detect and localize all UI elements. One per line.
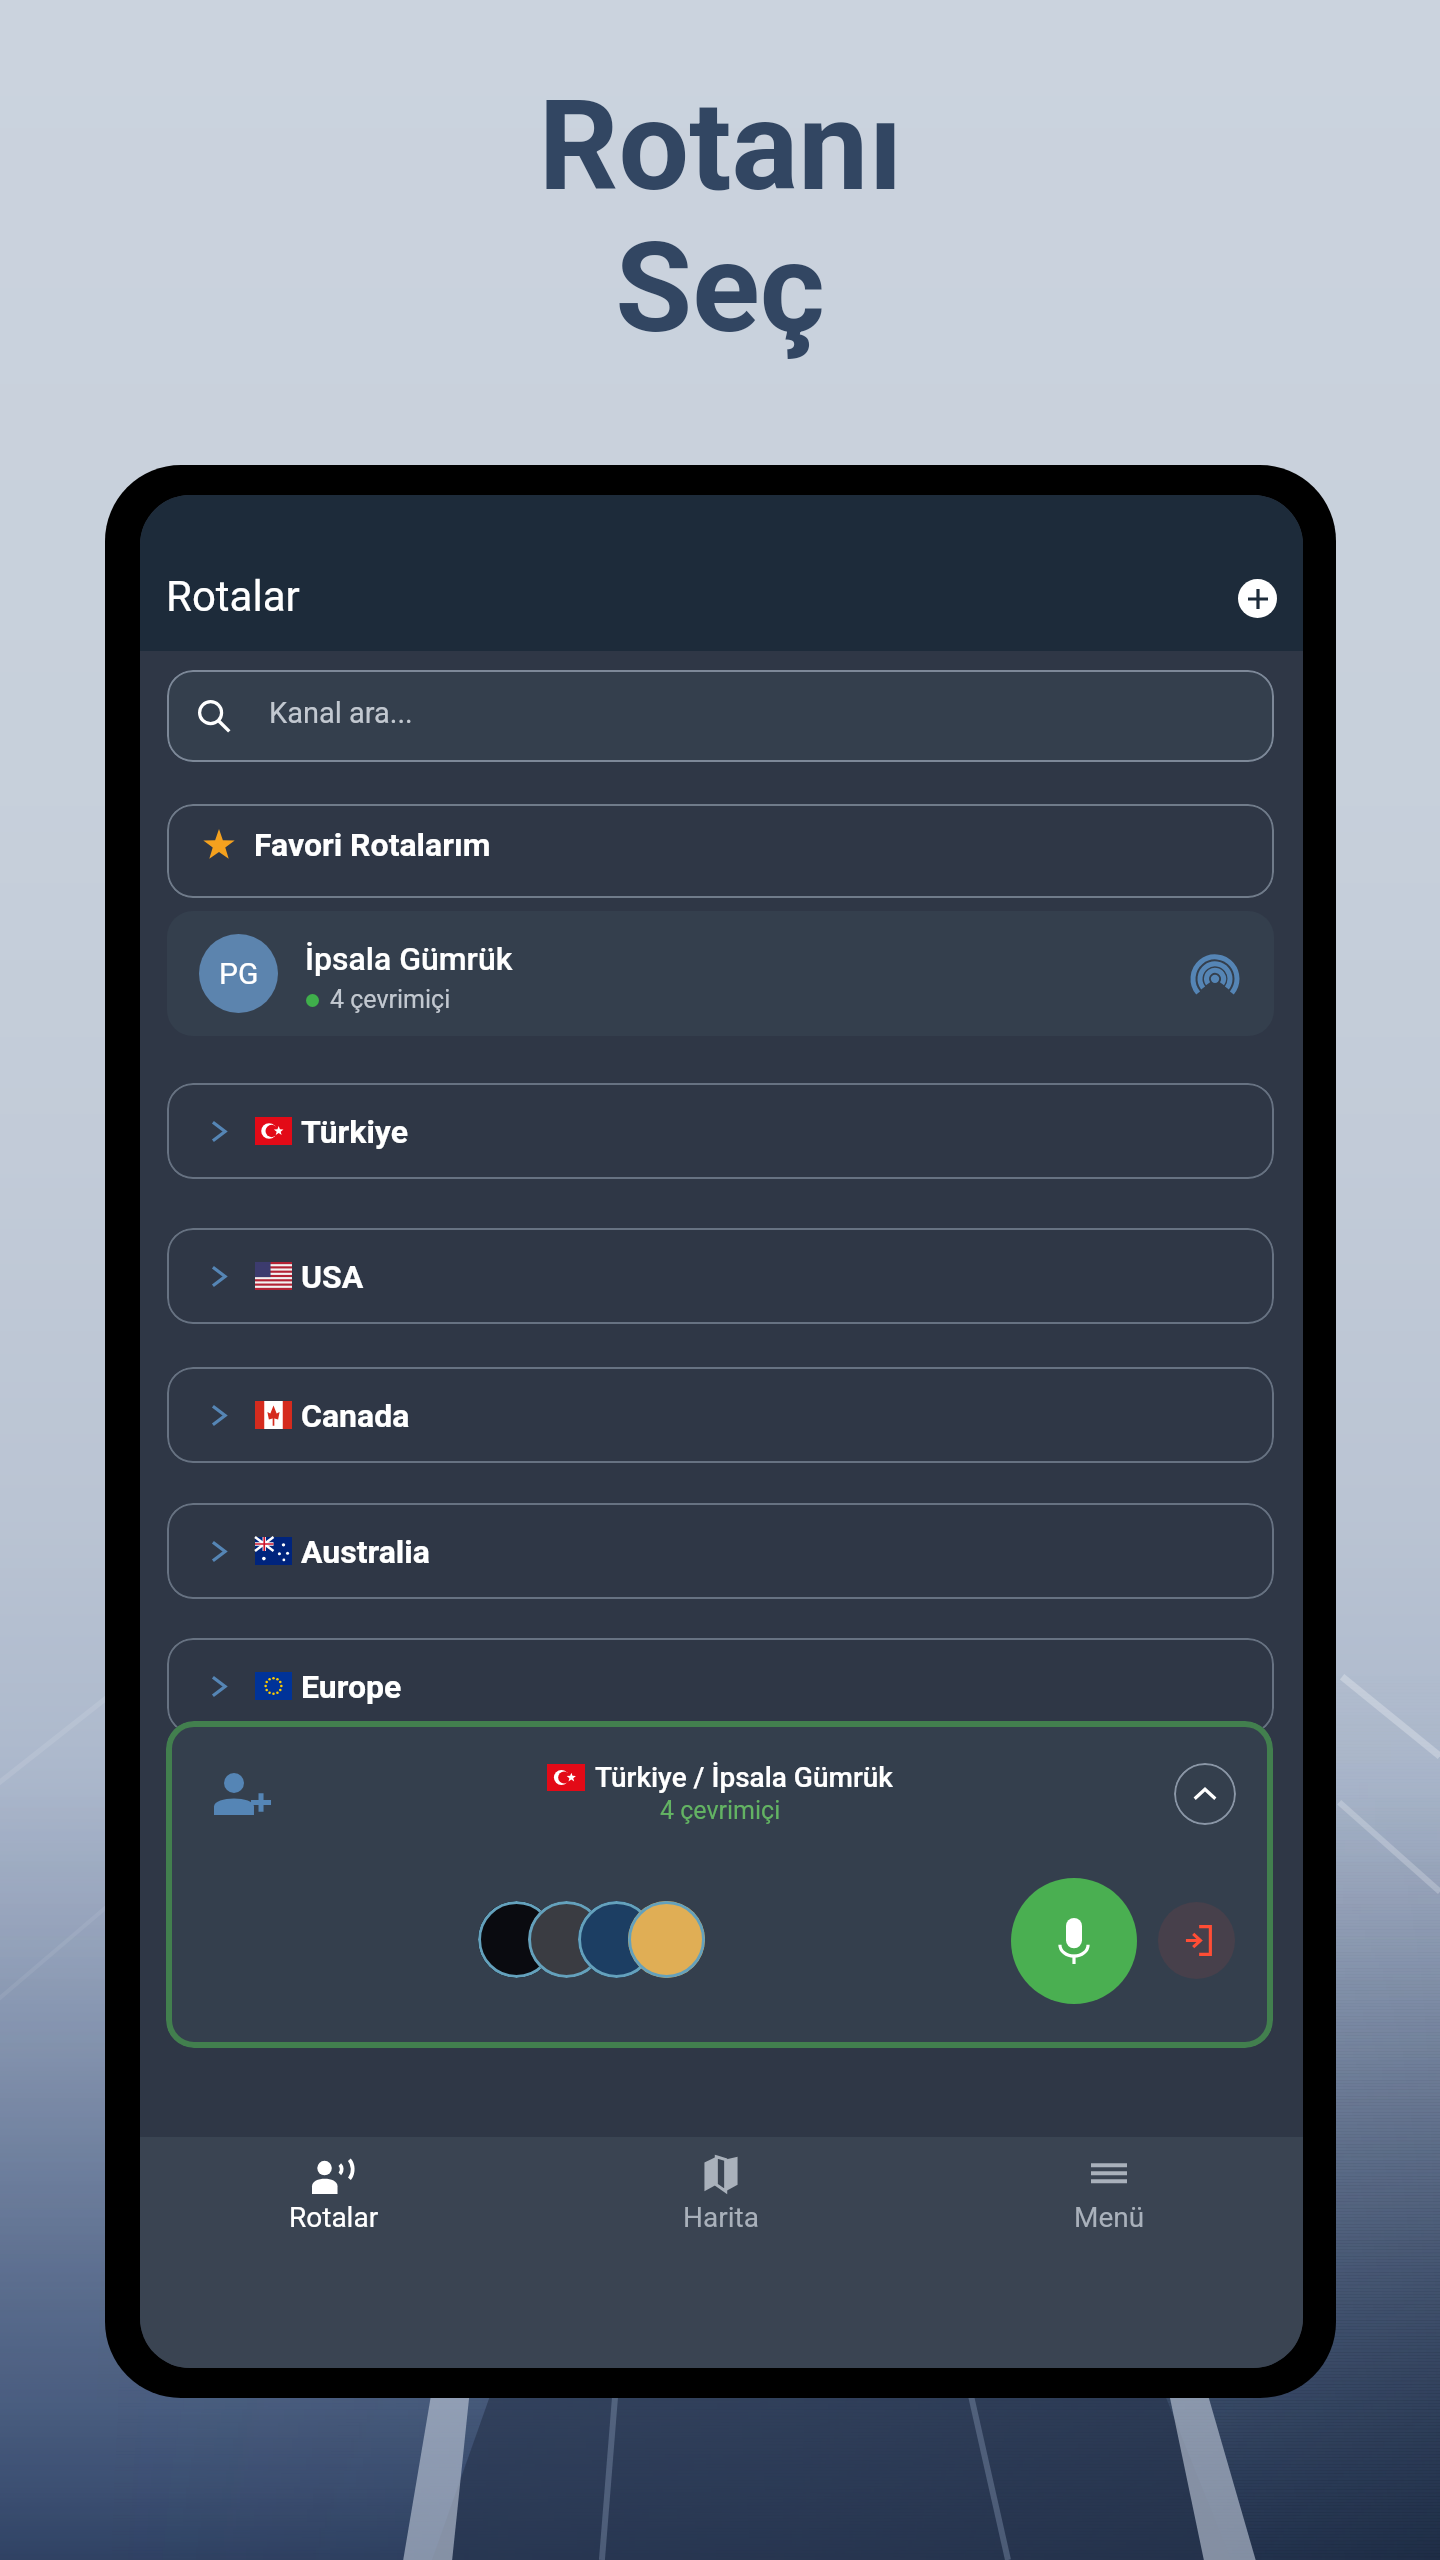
button[interactable]: Canada bbox=[167, 1367, 1274, 1463]
staticText: Türkiye bbox=[301, 1113, 409, 1151]
button[interactable]: Europe bbox=[167, 1638, 1274, 1734]
staticText: Canada bbox=[301, 1397, 410, 1435]
staticText: Kanal ara... bbox=[269, 696, 413, 730]
staticText: Rotanı bbox=[538, 73, 903, 219]
button[interactable]: Leave channel bbox=[1158, 1902, 1235, 1979]
button[interactable]: Australia bbox=[167, 1503, 1274, 1599]
staticText: USA bbox=[301, 1258, 364, 1296]
button[interactable]: Kanal ara... bbox=[167, 670, 1274, 762]
button[interactable]: Add route bbox=[1238, 579, 1277, 618]
staticText: Europe bbox=[301, 1668, 402, 1706]
button[interactable]: Favori Rotalarım bbox=[167, 804, 1274, 898]
button[interactable]: Menü bbox=[915, 2137, 1303, 2368]
staticText: PG bbox=[219, 956, 259, 991]
button[interactable]: PG bbox=[167, 911, 1274, 1036]
button[interactable]: Rotalar bbox=[140, 2137, 527, 2368]
staticText: Australia bbox=[301, 1533, 430, 1571]
other: Broadcast bbox=[1184, 946, 1246, 1008]
staticText: Rotalar bbox=[289, 2201, 379, 2234]
button[interactable]: Push to talk bbox=[1011, 1878, 1137, 2004]
button[interactable]: Collapse bbox=[1174, 1763, 1236, 1825]
button[interactable]: USA bbox=[167, 1228, 1274, 1324]
button[interactable]: Harita bbox=[527, 2137, 915, 2368]
staticText: Menü bbox=[1074, 2201, 1145, 2234]
staticText: Harita bbox=[683, 2201, 759, 2234]
staticText: 4 çevrimiçi bbox=[660, 1796, 781, 1825]
staticText: İpsala Gümrük bbox=[305, 940, 513, 978]
staticText: Türkiye / İpsala Gümrük bbox=[595, 1761, 893, 1794]
staticText: Rotalar bbox=[166, 572, 300, 621]
button[interactable]: Türkiye bbox=[167, 1083, 1274, 1179]
staticText: Seç bbox=[615, 215, 825, 361]
staticText: 4 çevrimiçi bbox=[330, 985, 451, 1014]
button[interactable]: Add person bbox=[214, 1773, 269, 1815]
staticText: Favori Rotalarım bbox=[254, 826, 491, 864]
